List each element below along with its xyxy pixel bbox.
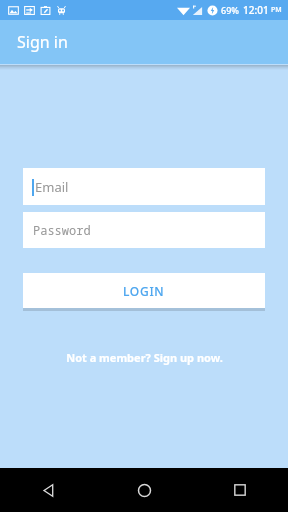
staticText: Not a member? Sign up now. (66, 350, 223, 365)
button[interactable]: LOGIN (23, 273, 265, 308)
staticText: 12:01 (243, 3, 269, 17)
staticText: Sign in (17, 31, 68, 53)
button[interactable]: Email (23, 168, 265, 205)
button[interactable]: Password (23, 212, 265, 248)
button[interactable]: Not a member? Sign up now. (23, 350, 265, 365)
staticText: Password (33, 222, 91, 238)
staticText: LOGIN (123, 283, 165, 299)
button[interactable]: Back (0, 468, 96, 512)
button[interactable]: Recent apps (192, 468, 288, 512)
button[interactable]: Home (96, 468, 192, 512)
staticText: PM (271, 5, 282, 15)
staticText: 69% (221, 4, 239, 16)
staticText: Email (35, 178, 69, 196)
